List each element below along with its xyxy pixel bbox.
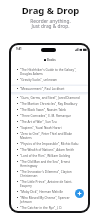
staticText: "The Catcher in the Rye", J. D. Salinger: [20, 206, 63, 210]
button[interactable]: "The Black Swan", Nassim Taleb: [11, 107, 88, 113]
button[interactable]: "Physics of the Impossible", Michio Kaku: [11, 141, 88, 147]
button[interactable]: "The Hitchhiker's Guide to the Galaxy", …: [11, 67, 88, 77]
button[interactable]: "The Art of War", Sun Tzu: [11, 119, 88, 125]
staticText: "The Old Man and the Sea", Ernest Heming…: [20, 160, 70, 168]
staticText: "The Wealth of Nations", Adam Smith: [20, 148, 75, 152]
staticText: Drag & Drop: [0, 4, 101, 17]
staticText: "Physics of the Impossible", Michio Kaku: [20, 142, 79, 146]
button[interactable]: "Zero to One", Peter Thiel and Blake Mas…: [11, 131, 88, 141]
button[interactable]: "Who Moved My Cheese", Spencer Johnson: [11, 195, 88, 205]
staticText: "Guns, Germs, and Steel", Jared Diamond: [20, 96, 80, 100]
button[interactable]: "The Little Prince", Antoine de Saint- E…: [11, 179, 88, 189]
button[interactable]: "Lord of the Flies", William Golding: [11, 153, 88, 159]
button[interactable]: "Guns, Germs, and Steel", Jared Diamond: [11, 95, 88, 101]
staticText: "Three Comrades", E. M. Remarque: [20, 114, 72, 118]
staticText: "The Hitchhiker's Guide to the Galaxy", …: [20, 68, 77, 76]
button[interactable]: "Sapiens", Yuval Noah Harari: [11, 125, 88, 131]
staticText: "Gravity Sucks", unknown: [20, 78, 58, 82]
staticText: "Zero to One", Peter Thiel and Blake Mas…: [20, 132, 73, 140]
button[interactable]: "The Catcher in the Rye", J. D. Salinger: [11, 205, 88, 211]
button[interactable]: "The Wealth of Nations", Adam Smith: [11, 147, 88, 153]
staticText: "Who Moved My Cheese", Spencer Johnson: [20, 196, 70, 204]
button[interactable]: "Moby Dick", Herman Melville: [11, 189, 88, 195]
staticText: "The Martian Chronicles", Ray Bradbury: [20, 102, 78, 106]
staticText: "Moby Dick", Herman Melville: [20, 190, 63, 194]
button[interactable]: "Three Comrades", E. M. Remarque: [11, 113, 88, 119]
staticText: "The Little Prince", Antoine de Saint- E…: [20, 180, 73, 188]
button[interactable]: "The Old Man and the Sea", Ernest Heming…: [11, 159, 88, 169]
staticText: "The Art of War", Sun Tzu: [20, 120, 57, 124]
button[interactable]: "Measurement", Paul Lockhart: [11, 86, 88, 92]
staticText: Books: [47, 58, 56, 62]
staticText: "Lord of the Flies", William Golding: [20, 154, 71, 158]
staticText: "The Innovator's Dilemma", Clayton Chris…: [20, 170, 72, 178]
button[interactable]: "The Innovator's Dilemma", Clayton Chris…: [11, 169, 88, 179]
staticText: 9:41: [16, 47, 22, 51]
button[interactable]: Add: [75, 189, 84, 198]
staticText: "Sapiens", Yuval Noah Harari: [20, 126, 62, 130]
button[interactable]: "The Martian Chronicles", Ray Bradbury: [11, 101, 88, 107]
staticText: Reorder anything. Just drag & drop.: [0, 18, 101, 29]
button[interactable]: "Gravity Sucks", unknown: [11, 77, 88, 83]
staticText: "The Black Swan", Nassim Taleb: [20, 108, 66, 112]
staticText: "Measurement", Paul Lockhart: [20, 87, 65, 91]
